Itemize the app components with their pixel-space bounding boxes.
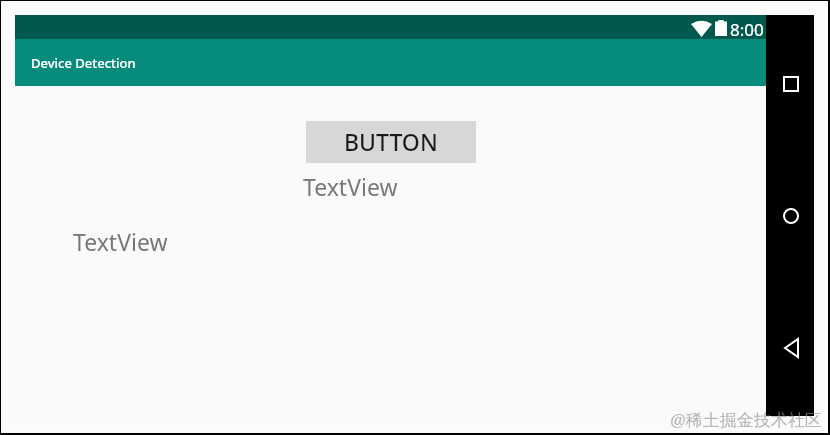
staticText: Device Detection — [31, 54, 136, 72]
staticText: BUTTON — [344, 126, 438, 157]
button[interactable]: Recent apps — [769, 62, 813, 106]
button[interactable]: Home — [769, 194, 813, 238]
button[interactable]: BUTTON — [306, 121, 476, 163]
button[interactable]: Back — [769, 326, 813, 370]
staticText: 8:00 — [730, 18, 764, 41]
staticText: TextView — [73, 226, 168, 257]
staticText: @稀土掘金技术社区 — [670, 408, 822, 431]
staticText: TextView — [303, 171, 398, 202]
